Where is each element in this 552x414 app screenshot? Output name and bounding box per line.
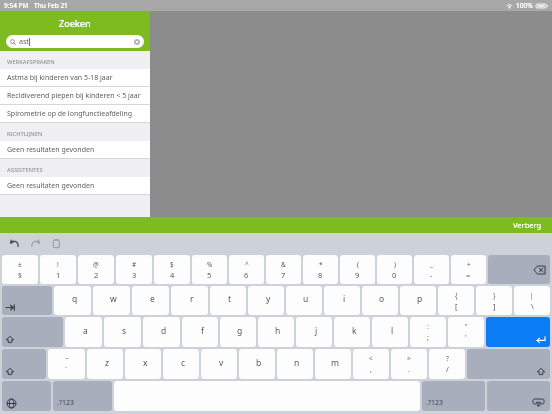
button[interactable]: b [239,349,275,379]
button[interactable]: ^ [229,255,264,284]
button[interactable]: o [362,286,398,315]
button[interactable]: Backspace [488,255,550,284]
button[interactable]: Geen resultaten gevonden [0,177,150,195]
button[interactable]: p [400,286,436,315]
staticText: , [370,364,373,374]
staticText: ` [65,364,68,374]
button[interactable]: Astma bij kinderen van 5-18 jaar [0,69,150,87]
button[interactable]: w [93,286,130,315]
staticText: d [161,325,167,337]
button[interactable]: Verberg [511,218,544,232]
button[interactable]: * [303,255,338,284]
staticText: 0 [392,270,397,280]
button[interactable]: Clear text [134,39,140,45]
staticText: n [294,357,300,369]
button[interactable]: s [104,317,141,347]
button[interactable]: d [143,317,180,347]
staticText: ) [394,260,396,269]
button[interactable]: g [220,317,256,347]
button[interactable]: Change keyboard [2,381,51,411]
button[interactable]: > [391,349,427,379]
button[interactable]: Redo [29,237,42,250]
button[interactable]: Return [486,317,550,347]
button[interactable]: { [438,286,474,315]
button[interactable]: ast [6,35,144,48]
button[interactable]: y [248,286,284,315]
button[interactable]: u [286,286,322,315]
button[interactable]: Hide keyboard [487,381,550,411]
staticText: ; [427,332,430,342]
button[interactable]: _ [414,255,449,284]
staticText: p [417,293,423,305]
button[interactable]: < [353,349,389,379]
staticText: > [407,354,411,363]
staticText: o [379,293,385,305]
button[interactable]: ! [40,255,76,284]
button[interactable]: r [171,286,208,315]
button[interactable]: j [296,317,332,347]
staticText: [ [455,301,458,311]
button[interactable]: .?123 [53,381,112,411]
button[interactable]: % [192,255,227,284]
button[interactable]: Geen resultaten gevonden [0,141,150,159]
button[interactable]: } [476,286,512,315]
button[interactable]: Spirometrie op de longfunctieafdeling [0,105,150,123]
staticText: Spirometrie op de longfunctieafdeling [7,109,133,119]
staticText: k [352,325,357,337]
button[interactable]: ± [2,255,38,284]
button[interactable]: n [277,349,313,379]
staticText: = [466,270,471,280]
button[interactable]: + [451,255,486,284]
button[interactable]: m [315,349,351,379]
button[interactable]: q [54,286,91,315]
staticText: ( [357,260,359,269]
staticText: 3 [132,270,137,280]
button[interactable]: c [163,349,199,379]
button[interactable]: .?123 [422,381,485,411]
staticText: Geen resultaten gevonden [7,181,95,191]
button[interactable]: h [258,317,294,347]
button[interactable]: z [87,349,123,379]
button[interactable]: Shift [467,349,550,379]
button[interactable]: Undo [8,237,21,250]
staticText: % [207,260,213,269]
button[interactable]: | [514,286,550,315]
button[interactable]: t [210,286,246,315]
button[interactable]: ) [377,255,412,284]
staticText: WERKAFSPRAKEN [7,58,55,66]
button[interactable]: Shift [2,317,63,347]
button[interactable]: x [125,349,161,379]
button[interactable]: ( [340,255,375,284]
staticText: m [331,357,339,369]
button[interactable]: & [266,255,301,284]
button[interactable]: ~ [48,349,85,379]
staticText: i [343,293,346,305]
button[interactable]: e [132,286,169,315]
staticText: ast [19,37,29,47]
staticText: z [105,357,109,369]
button[interactable]: Paste [50,237,63,250]
button[interactable]: $ [154,255,190,284]
staticText: 100% [516,1,533,10]
button[interactable]: ? [429,349,465,379]
button[interactable]: : [410,317,446,347]
button[interactable]: a [65,317,102,347]
button[interactable]: Recidiverend piepen bij kinderen < 5 jaa… [0,87,150,105]
button[interactable]: k [334,317,370,347]
button[interactable]: l [372,317,408,347]
staticText: < [369,354,373,363]
button[interactable]: Tab [2,286,52,315]
button[interactable]: i [324,286,360,315]
button[interactable]: # [116,255,152,284]
button[interactable]: v [201,349,237,379]
staticText: x [143,357,148,369]
button[interactable]: Shift [2,349,46,379]
staticText: _ [430,260,433,269]
button[interactable]: @ [78,255,114,284]
button[interactable]: f [182,317,218,347]
staticText: b [256,357,262,369]
staticText: § [18,270,22,280]
button[interactable]: " [448,317,484,347]
staticText: 4 [170,270,175,280]
